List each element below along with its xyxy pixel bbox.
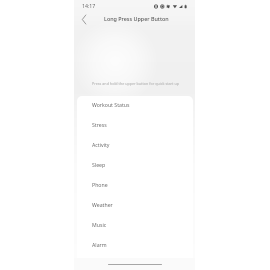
staticText: Phone xyxy=(92,181,108,188)
staticText: Press and hold the upper button for quic… xyxy=(75,81,196,86)
staticText: Long Press Upper Button xyxy=(104,15,169,22)
staticText: Weather xyxy=(92,201,113,208)
staticText: Activity xyxy=(92,141,110,148)
button[interactable]: Music xyxy=(77,214,193,234)
button[interactable]: Stress xyxy=(77,114,193,134)
staticText: Alarm xyxy=(92,241,107,248)
staticText: Workout Status xyxy=(92,101,130,108)
button[interactable]: Activity xyxy=(77,134,193,154)
staticText: 14:17 xyxy=(82,2,96,9)
button[interactable]: Sleep xyxy=(77,154,193,174)
button[interactable]: Phone xyxy=(77,174,193,194)
staticText: Stress xyxy=(92,121,107,128)
staticText: Music xyxy=(92,221,107,228)
button[interactable]: Weather xyxy=(77,194,193,214)
button[interactable]: Alarm xyxy=(77,234,193,254)
button[interactable]: Back xyxy=(78,13,90,25)
button[interactable]: Workout Status xyxy=(77,96,193,114)
staticText: Sleep xyxy=(92,161,106,168)
